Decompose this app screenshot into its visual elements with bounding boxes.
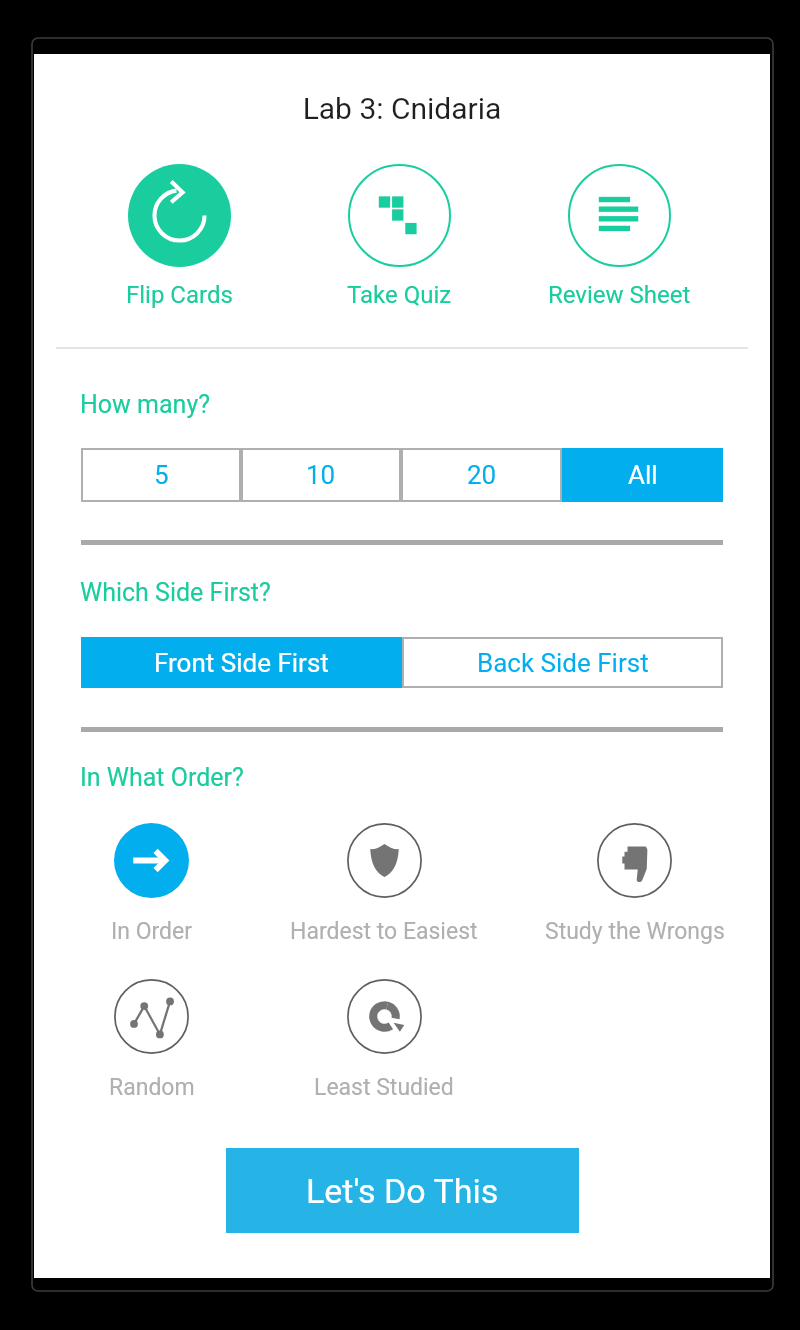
staticText: Front Side First bbox=[154, 648, 329, 678]
staticText: Let's Do This bbox=[306, 1171, 499, 1211]
button[interactable]: 20 bbox=[401, 448, 562, 502]
staticText: In What Order? bbox=[80, 763, 244, 792]
staticText: Take Quiz bbox=[347, 281, 452, 309]
staticText: 5 bbox=[154, 460, 169, 490]
staticText: 10 bbox=[306, 460, 336, 490]
staticText: 20 bbox=[467, 460, 497, 490]
button[interactable]: All bbox=[562, 448, 723, 502]
staticText: In Order bbox=[111, 918, 193, 945]
staticText: How many? bbox=[80, 390, 211, 419]
button[interactable]: Least Studied bbox=[269, 979, 499, 1101]
button[interactable]: In Order bbox=[34, 823, 269, 945]
other: Review Sheet bbox=[568, 164, 671, 267]
button[interactable]: 10 bbox=[241, 448, 401, 502]
staticText: Hardest to Easiest bbox=[290, 918, 478, 945]
button[interactable]: Front Side First bbox=[81, 637, 402, 688]
button[interactable]: Study the Wrongs bbox=[499, 823, 770, 945]
button[interactable]: Take Quiz bbox=[289, 164, 509, 309]
other: Least Studied bbox=[347, 979, 422, 1054]
staticText: Which Side First? bbox=[80, 578, 271, 607]
other: In Order bbox=[114, 823, 189, 898]
other: Random bbox=[114, 979, 189, 1054]
staticText: Flip Cards bbox=[126, 281, 233, 309]
staticText: Review Sheet bbox=[548, 281, 691, 309]
staticText: All bbox=[628, 460, 658, 490]
other: Flip Cards bbox=[128, 164, 231, 267]
staticText: Random bbox=[109, 1074, 195, 1101]
button[interactable]: Random bbox=[34, 979, 269, 1101]
staticText: Lab 3: Cnidaria bbox=[34, 91, 770, 126]
staticText: Study the Wrongs bbox=[545, 918, 725, 945]
button[interactable]: Review Sheet bbox=[509, 164, 729, 309]
button[interactable]: 5 bbox=[81, 448, 241, 502]
button[interactable]: Flip Cards bbox=[69, 164, 289, 309]
button[interactable]: Hardest to Easiest bbox=[269, 823, 499, 945]
other: Study the Wrongs bbox=[597, 823, 672, 898]
other: Take Quiz bbox=[348, 164, 451, 267]
button[interactable]: Back Side First bbox=[402, 637, 723, 688]
other: Hardest to Easiest bbox=[347, 823, 422, 898]
staticText: Back Side First bbox=[477, 648, 649, 678]
staticText: Least Studied bbox=[314, 1074, 454, 1101]
button[interactable]: Let's Do This bbox=[226, 1148, 579, 1233]
